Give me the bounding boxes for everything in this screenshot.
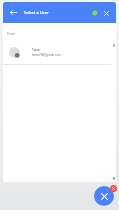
staticText: tanvir98@gmail.com (32, 53, 62, 57)
staticText: Select a User (24, 10, 49, 15)
button[interactable]: Dismiss (110, 185, 117, 192)
staticText: Users (7, 32, 15, 36)
button[interactable]: Close dialog (94, 186, 114, 206)
button[interactable]: Close (100, 7, 112, 19)
button[interactable]: Back (7, 6, 20, 19)
button[interactable]: Tanvir (3, 42, 116, 63)
button[interactable]: Android Studio (89, 7, 101, 19)
staticText: Tanvir (32, 48, 41, 52)
